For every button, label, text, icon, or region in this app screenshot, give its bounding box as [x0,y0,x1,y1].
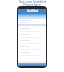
staticText: Get your Sortified [19,0,46,3]
button[interactable] [20,28,43,34]
button[interactable] [18,63,46,66]
button[interactable] [20,34,43,40]
button[interactable] [20,46,43,52]
button[interactable]: Sortified [18,9,46,19]
button[interactable] [20,40,43,46]
button[interactable] [20,52,43,58]
staticText: Sortified [27,9,38,13]
staticText: Planet here [23,3,41,6]
